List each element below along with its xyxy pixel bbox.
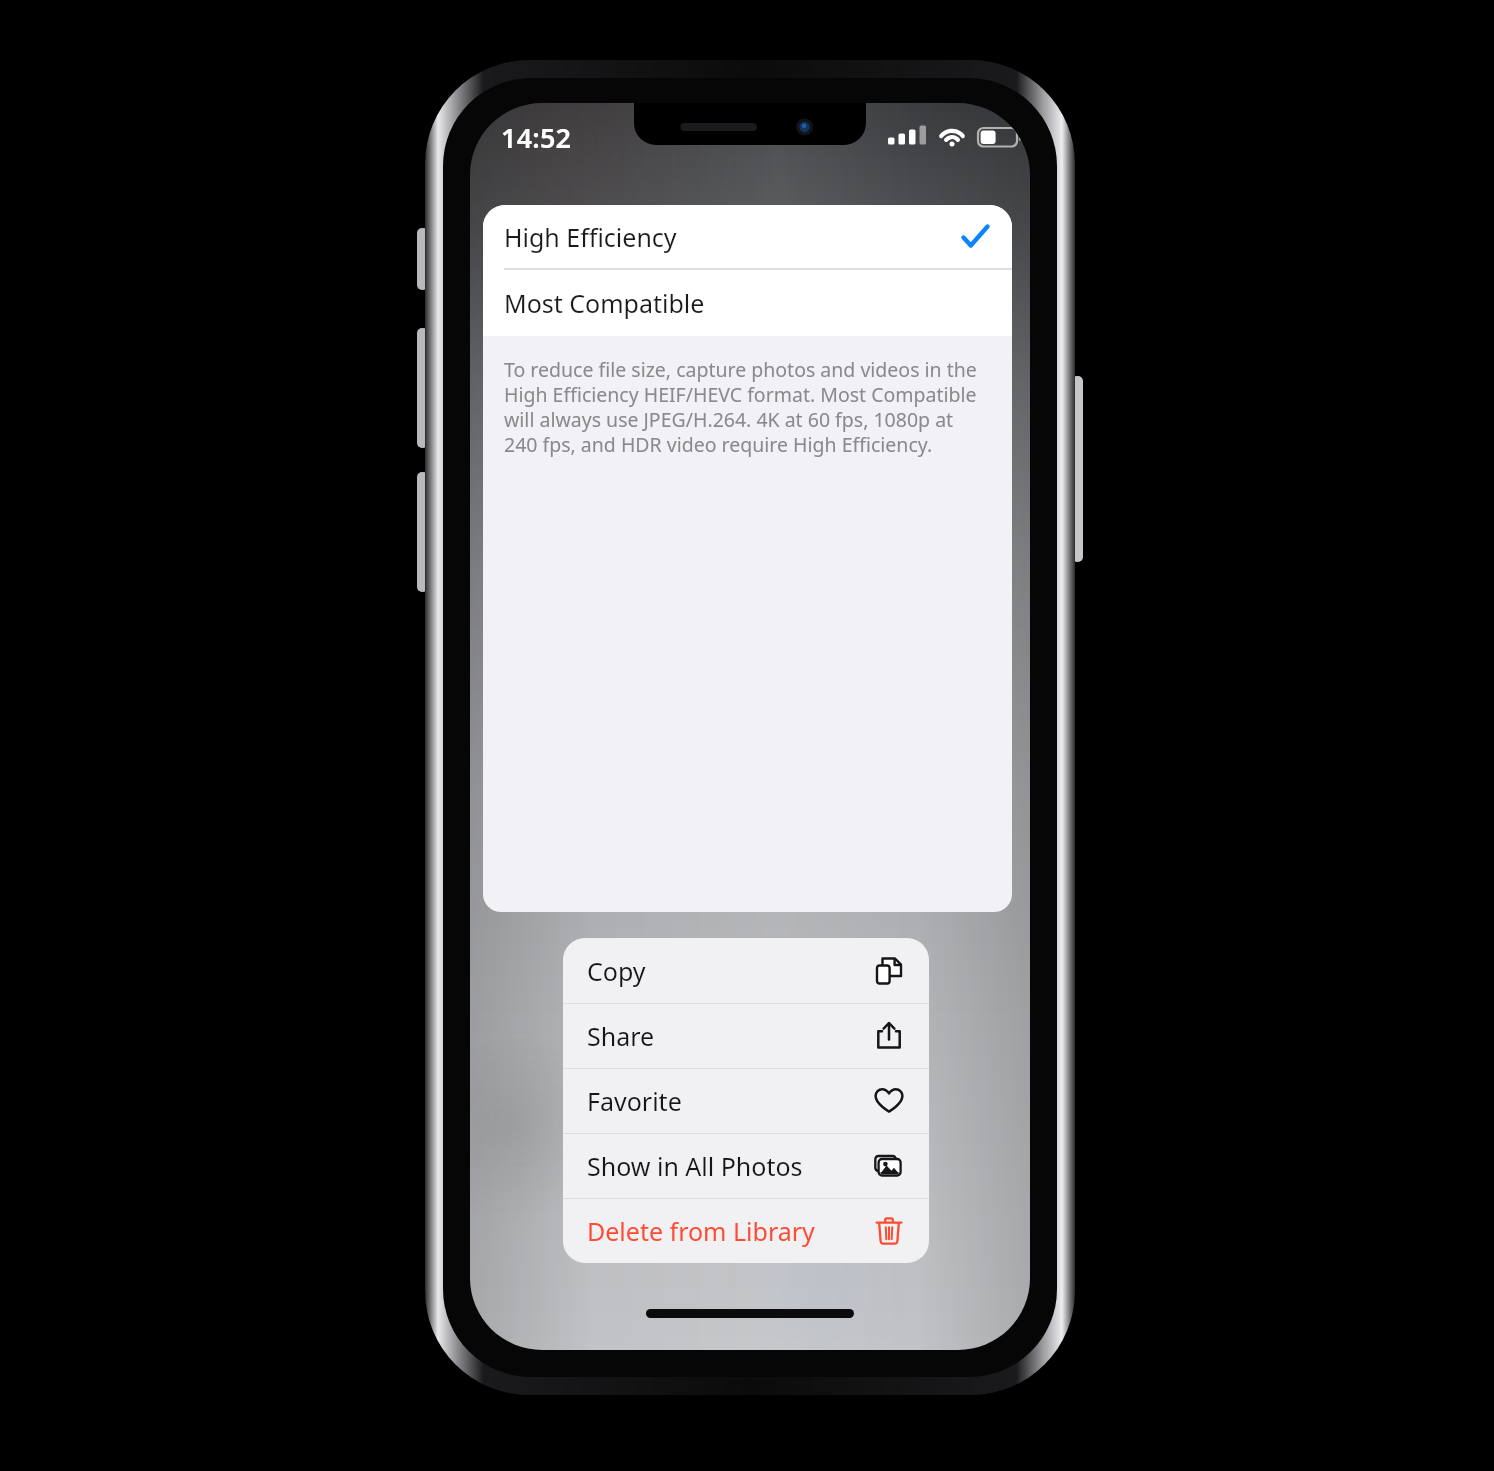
- button[interactable]: Favorite: [563, 1069, 929, 1133]
- staticText: Delete from Library: [587, 1214, 815, 1248]
- staticText: High Efficiency: [504, 220, 677, 254]
- staticText: Favorite: [587, 1084, 682, 1118]
- button[interactable]: Delete from Library: [563, 1199, 929, 1263]
- staticText: Share: [587, 1019, 655, 1053]
- staticText: Most Compatible: [504, 286, 705, 320]
- button[interactable]: Share: [563, 1004, 929, 1068]
- button[interactable]: Most Compatible: [483, 270, 1012, 336]
- staticText: Copy: [587, 954, 646, 988]
- button[interactable]: Show in All Photos: [563, 1134, 929, 1198]
- staticText: 14:52: [501, 119, 572, 156]
- staticText: Show in All Photos: [587, 1149, 803, 1183]
- staticText: To reduce file size, capture photos and …: [504, 356, 989, 458]
- other: Home: [646, 1309, 854, 1318]
- button[interactable]: High Efficiency: [483, 205, 1012, 268]
- button[interactable]: Copy: [563, 938, 929, 1003]
